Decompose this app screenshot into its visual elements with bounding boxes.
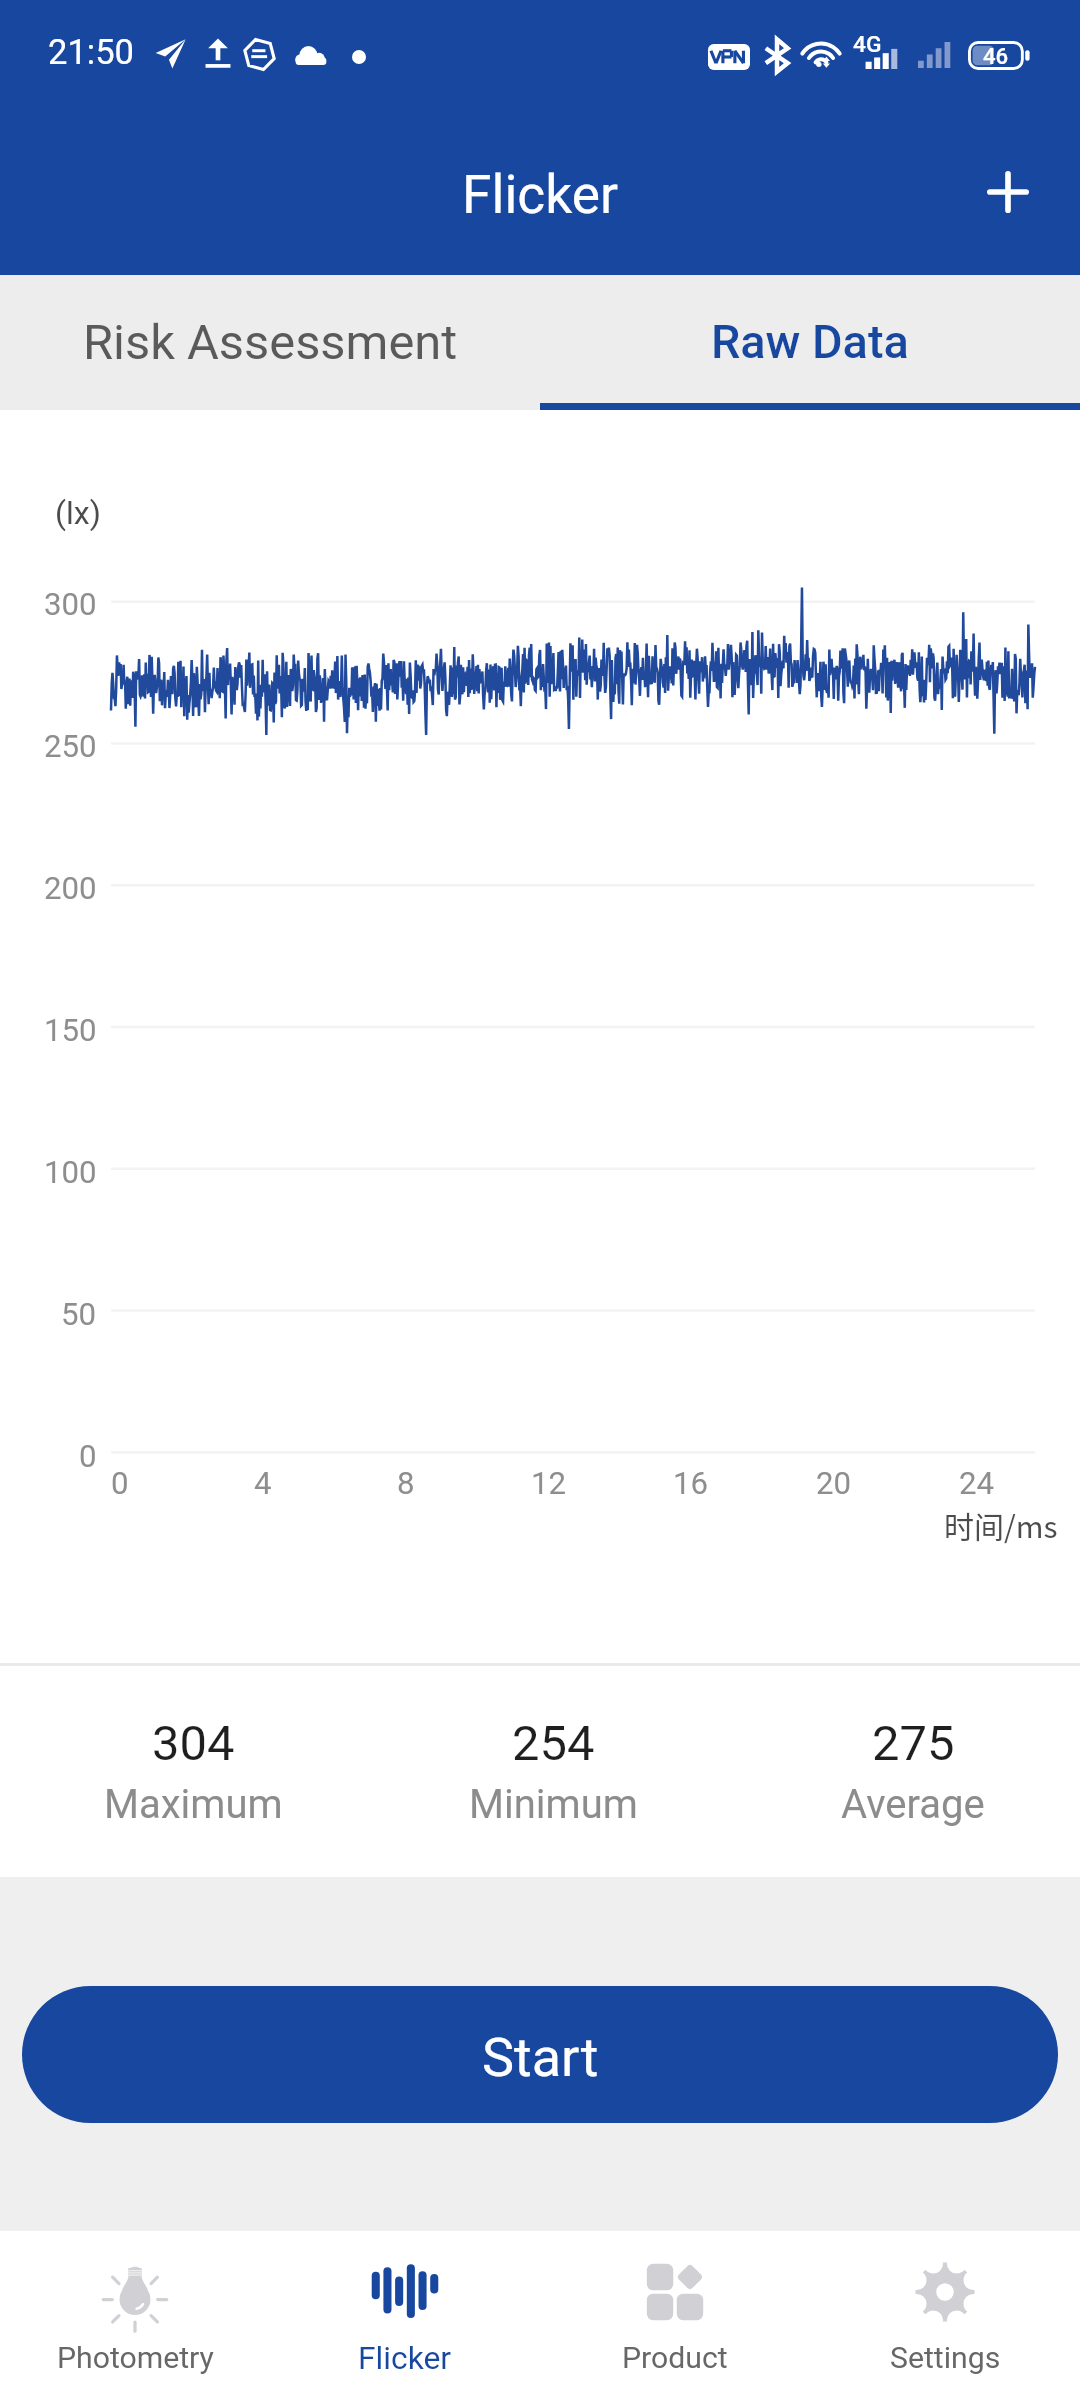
button[interactable]: Add [984, 168, 1032, 216]
staticText: 275 [872, 1715, 955, 1772]
button[interactable]: Risk Assessment [0, 275, 540, 410]
button[interactable]: Flicker [270, 2231, 540, 2400]
staticText: 4 [254, 1465, 272, 1502]
staticText: 0 [79, 1438, 97, 1475]
staticText: 250 [44, 728, 97, 765]
staticText: 0 [111, 1465, 129, 1502]
staticText: 12 [531, 1465, 567, 1502]
staticText: Flicker [358, 2339, 452, 2376]
button[interactable]: Settings [810, 2231, 1080, 2400]
staticText: 时间/ms [944, 1503, 1058, 1546]
staticText: Photometry [57, 2340, 214, 2375]
staticText: 254 [512, 1715, 595, 1772]
staticText: Start [482, 2026, 599, 2089]
staticText: 150 [44, 1012, 97, 1049]
staticText: 4G [853, 31, 882, 58]
staticText: 100 [44, 1154, 97, 1191]
staticText: 46 [983, 43, 1009, 69]
staticText: 24 [959, 1465, 995, 1502]
staticText: Raw Data [711, 315, 909, 370]
staticText: Minimum [469, 1781, 638, 1828]
staticText: Average [841, 1781, 985, 1828]
button[interactable]: Product [540, 2231, 810, 2400]
staticText: 20 [816, 1465, 852, 1502]
staticText: 8 [397, 1465, 415, 1502]
staticText: Settings [890, 2340, 1001, 2375]
staticText: (lx) [55, 494, 101, 532]
button[interactable]: Start [22, 1986, 1058, 2123]
staticText: Flicker [462, 164, 618, 226]
staticText: 304 [152, 1715, 235, 1772]
staticText: Product [622, 2340, 728, 2375]
button[interactable]: Photometry [0, 2231, 270, 2400]
staticText: 300 [44, 586, 97, 623]
staticText: 21:50 [48, 32, 134, 72]
staticText: 16 [673, 1465, 709, 1502]
staticText: Maximum [104, 1781, 283, 1828]
button[interactable]: Raw Data [540, 275, 1080, 410]
staticText: 50 [61, 1296, 97, 1333]
staticText: Risk Assessment [83, 314, 458, 371]
staticText: 200 [44, 870, 97, 907]
